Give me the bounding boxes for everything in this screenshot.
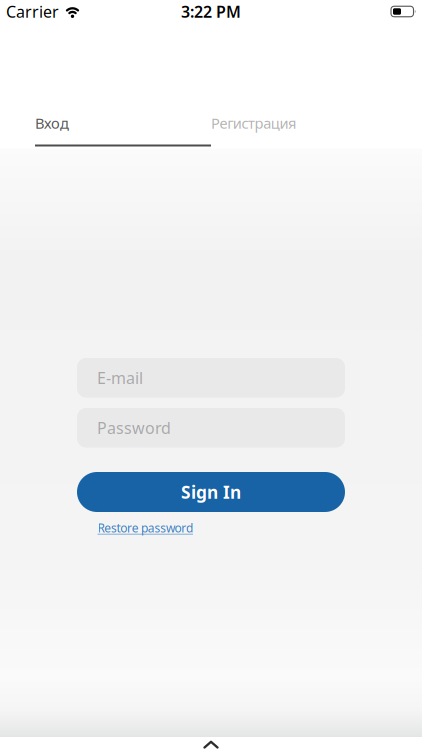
button[interactable]: Sign In — [77, 472, 345, 512]
button[interactable]: Вход — [35, 113, 211, 133]
staticText: Регистрация — [211, 113, 296, 133]
staticText: Password — [97, 417, 171, 438]
button[interactable]: Регистрация — [211, 113, 387, 133]
button[interactable]: Collapse — [204, 741, 218, 748]
staticText: Вход — [35, 113, 69, 133]
staticText: Sign In — [181, 480, 241, 503]
button[interactable]: Restore password — [97, 520, 193, 536]
staticText: Carrier — [6, 1, 59, 22]
staticText: E-mail — [97, 367, 143, 388]
staticText: 3:22 PM — [181, 1, 241, 22]
staticText: Restore password — [97, 520, 193, 536]
